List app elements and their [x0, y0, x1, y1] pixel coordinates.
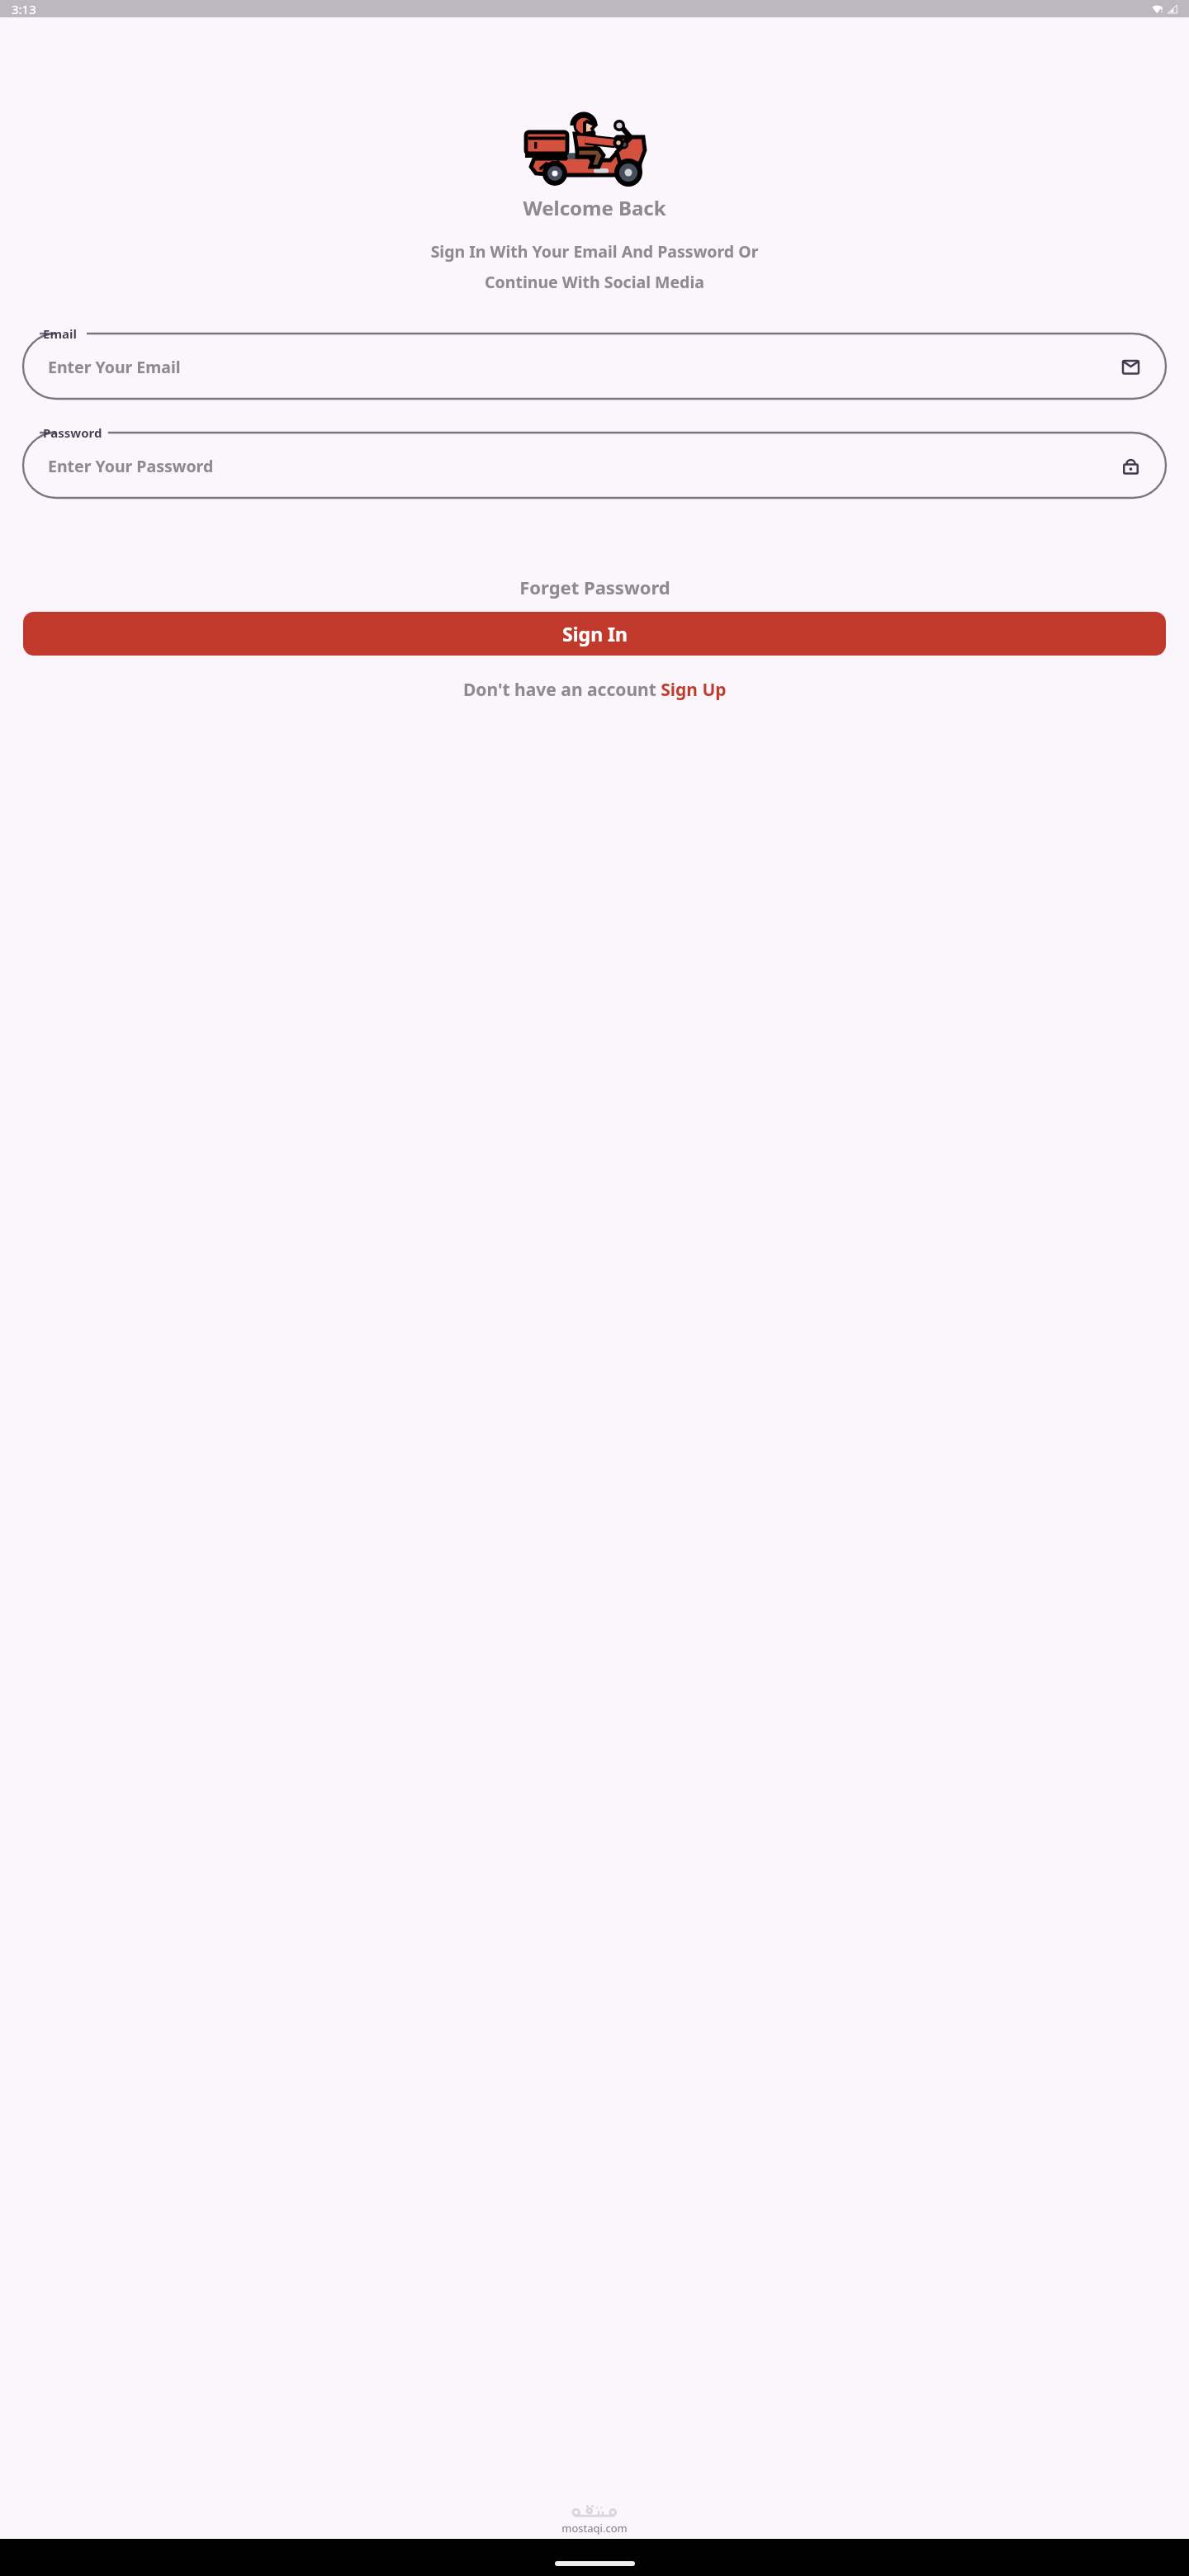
staticText: mostaqi.com [561, 2521, 628, 2536]
staticText: Sign In With Your Email And Password Or … [17, 240, 1172, 293]
staticText: Enter Your Email [48, 356, 181, 378]
button[interactable]: Forget Password [0, 573, 1189, 601]
button[interactable]: Email [23, 326, 1166, 399]
staticText: Sign In [562, 621, 628, 646]
button[interactable]: Sign In [23, 612, 1166, 656]
other: Email [1120, 357, 1141, 377]
staticText: Forget Password [519, 575, 670, 599]
button[interactable]: Don't have an account Sign Up [0, 677, 1189, 702]
staticText: 3:13 [12, 1, 36, 17]
staticText: Enter Your Password [48, 455, 214, 477]
staticText: Email [43, 325, 77, 342]
staticText: Password [43, 424, 102, 441]
button[interactable]: Password [23, 425, 1166, 498]
staticText: Welcome Back [0, 194, 1189, 221]
staticText: Don't have an account Sign Up [463, 678, 727, 702]
other: Password [1120, 456, 1141, 476]
